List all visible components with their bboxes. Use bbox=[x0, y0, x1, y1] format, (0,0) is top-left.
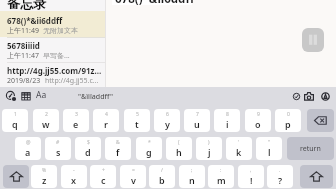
button[interactable]: 9 bbox=[245, 109, 271, 132]
staticText: ( bbox=[178, 139, 180, 146]
button[interactable]: ) bbox=[196, 137, 222, 160]
staticText: ) bbox=[208, 139, 210, 146]
button[interactable]: 678()*&ii6ddff bbox=[0, 11, 105, 36]
staticText: 5 bbox=[136, 111, 139, 118]
button[interactable]: return bbox=[287, 137, 334, 160]
staticText: a bbox=[25, 146, 31, 158]
button[interactable]: 0 bbox=[275, 109, 301, 132]
button[interactable]: Shift bbox=[3, 165, 29, 188]
button[interactable]: 6 bbox=[154, 109, 180, 132]
button[interactable]: 2 bbox=[33, 109, 59, 132]
staticText: , bbox=[250, 167, 252, 174]
staticText: z bbox=[42, 174, 47, 186]
staticText: v bbox=[131, 174, 136, 186]
button[interactable]: 8 bbox=[214, 109, 240, 132]
button[interactable]: + bbox=[90, 165, 116, 188]
button[interactable]: Aa bbox=[35, 89, 47, 101]
staticText: m bbox=[217, 174, 226, 186]
staticText: 8 bbox=[226, 111, 229, 118]
staticText: y bbox=[165, 118, 170, 130]
staticText: b bbox=[159, 174, 165, 186]
staticText: i bbox=[226, 118, 229, 130]
staticText: f bbox=[116, 146, 120, 158]
staticText: p bbox=[285, 118, 291, 130]
button[interactable]: = bbox=[120, 165, 146, 188]
staticText: x bbox=[71, 174, 77, 186]
staticText: ! bbox=[250, 174, 253, 186]
staticText: 上午11:47 bbox=[7, 51, 39, 61]
button[interactable]: 7 bbox=[184, 109, 210, 132]
staticText: 7 bbox=[196, 111, 199, 118]
staticText: + bbox=[102, 167, 105, 174]
staticText: 6 bbox=[166, 111, 169, 118]
button[interactable]: / bbox=[149, 165, 175, 188]
button[interactable]: . bbox=[267, 165, 293, 188]
staticText: % bbox=[42, 167, 47, 174]
button[interactable]: @ bbox=[15, 137, 41, 160]
button[interactable]: * bbox=[136, 137, 162, 160]
staticText: 无附加文本 bbox=[43, 26, 78, 35]
staticText: 678()*&ii6ddff bbox=[115, 0, 195, 5]
staticText: & bbox=[116, 139, 120, 146]
staticText: q bbox=[12, 118, 18, 130]
staticText: : bbox=[220, 167, 222, 174]
button[interactable]: 5 bbox=[124, 109, 150, 132]
staticText: $ bbox=[87, 139, 90, 146]
staticText: 2019/8/23 bbox=[7, 76, 41, 86]
button[interactable]: Backspace bbox=[307, 109, 334, 132]
staticText: " bbox=[268, 139, 271, 146]
staticText: ; bbox=[191, 167, 193, 174]
staticText: 9 bbox=[257, 111, 260, 118]
staticText: r bbox=[104, 118, 108, 130]
staticText: g bbox=[146, 146, 152, 158]
button[interactable]: & bbox=[105, 137, 131, 160]
button[interactable]: - bbox=[61, 165, 87, 188]
staticText: u bbox=[194, 118, 200, 130]
staticText: * bbox=[148, 139, 151, 146]
staticText: o bbox=[255, 118, 261, 130]
button[interactable]: # bbox=[45, 137, 71, 160]
staticText: l bbox=[268, 146, 271, 158]
button[interactable]: : bbox=[208, 165, 234, 188]
staticText: n bbox=[189, 174, 195, 186]
staticText: / bbox=[161, 167, 163, 174]
button[interactable]: $ bbox=[75, 137, 101, 160]
staticText: j bbox=[208, 146, 211, 158]
button[interactable]: ' bbox=[226, 137, 252, 160]
button[interactable]: Markup bbox=[6, 91, 16, 101]
staticText: t bbox=[135, 118, 139, 130]
button[interactable]: % bbox=[31, 165, 57, 188]
button[interactable]: 5678iiiid bbox=[0, 36, 105, 61]
staticText: 5678iiiid bbox=[7, 40, 40, 51]
staticText: 2 bbox=[45, 111, 48, 118]
button[interactable]: 3 bbox=[63, 109, 89, 132]
staticText: Aa bbox=[36, 89, 47, 101]
staticText: # bbox=[56, 139, 60, 146]
staticText: 4 bbox=[105, 111, 108, 118]
button[interactable]: Markup pen bbox=[321, 92, 330, 101]
button[interactable]: 1 bbox=[2, 109, 28, 132]
staticText: 早写备... bbox=[43, 51, 70, 61]
button[interactable]: 4 bbox=[93, 109, 119, 132]
staticText: 1 bbox=[14, 111, 17, 118]
button[interactable]: Camera bbox=[304, 92, 314, 102]
button[interactable]: Shift bbox=[300, 165, 333, 188]
staticText: . bbox=[279, 167, 281, 174]
button[interactable]: ; bbox=[179, 165, 205, 188]
staticText: @ bbox=[26, 139, 31, 146]
button[interactable]: Table bbox=[21, 91, 31, 101]
button[interactable]: Hide keyboard bbox=[302, 28, 324, 52]
staticText: = bbox=[132, 167, 135, 174]
staticText: k bbox=[236, 146, 242, 158]
button[interactable]: Checklist bbox=[292, 92, 301, 101]
staticText: 0 bbox=[287, 111, 290, 118]
staticText: 3 bbox=[75, 111, 78, 118]
staticText: s bbox=[56, 146, 61, 158]
staticText: return bbox=[300, 144, 321, 154]
button[interactable]: ( bbox=[166, 137, 192, 160]
button[interactable]: http://4g.jj55.com/91zs_... bbox=[0, 61, 105, 86]
button[interactable]: , bbox=[238, 165, 264, 188]
staticText: - bbox=[73, 167, 75, 174]
button[interactable]: " bbox=[256, 137, 282, 160]
staticText: c bbox=[101, 174, 106, 186]
